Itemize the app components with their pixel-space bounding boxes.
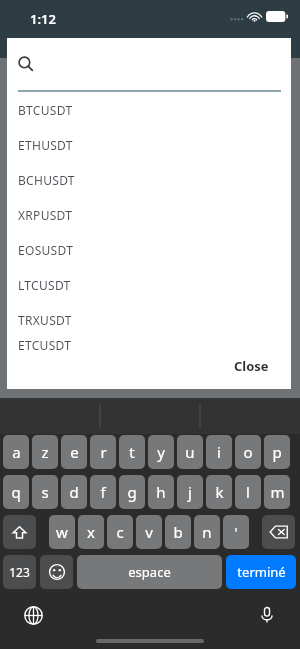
staticText: BTCUSDT — [18, 102, 73, 118]
button[interactable]: g — [119, 475, 145, 509]
button[interactable]: Change keyboard language — [18, 600, 48, 630]
staticText: e — [70, 442, 79, 462]
button[interactable]: BTCUSDT — [7, 92, 291, 127]
staticText: terminé — [237, 563, 286, 581]
staticText: t — [129, 442, 135, 462]
staticText: Close — [234, 357, 269, 375]
staticText: LTCUSDT — [18, 277, 71, 293]
button[interactable]: b — [165, 515, 191, 549]
staticText: u — [185, 442, 195, 462]
staticText: d — [69, 482, 79, 502]
staticText: y — [157, 442, 165, 462]
button[interactable]: 123 — [3, 555, 36, 589]
button[interactable]: espace — [77, 555, 222, 589]
button[interactable]: d — [61, 475, 87, 509]
button[interactable]: c — [107, 515, 133, 549]
staticText: a — [12, 442, 21, 462]
button[interactable]: z — [32, 435, 58, 469]
staticText: w — [56, 522, 68, 542]
button[interactable]: ETHUSDT — [7, 127, 291, 162]
button[interactable]: h — [148, 475, 174, 509]
staticText: TRXUSDT — [18, 312, 72, 328]
staticText: p — [272, 442, 282, 462]
staticText: XRPUSDT — [18, 207, 73, 223]
button[interactable]: y — [148, 435, 174, 469]
button[interactable]: l — [235, 475, 261, 509]
staticText: ETHUSDT — [18, 137, 73, 153]
staticText: n — [202, 522, 212, 542]
button[interactable]: TRXUSDT — [7, 302, 291, 337]
button[interactable]: p — [264, 435, 290, 469]
button[interactable]: Voice input — [252, 600, 282, 630]
button[interactable]: t — [119, 435, 145, 469]
staticText: f — [100, 482, 106, 502]
button[interactable]: XRPUSDT — [7, 197, 291, 232]
staticText: h — [156, 482, 166, 502]
button[interactable]: f — [90, 475, 116, 509]
staticText: z — [41, 442, 49, 462]
button[interactable]: BCHUSDT — [7, 162, 291, 197]
staticText: ETCUSDT — [18, 337, 72, 351]
staticText: v — [145, 522, 153, 542]
button[interactable]: ETCUSDT — [7, 337, 291, 351]
staticText: o — [243, 442, 253, 462]
button[interactable]: Emoji — [40, 555, 73, 589]
button[interactable]: m — [264, 475, 290, 509]
staticText: BCHUSDT — [18, 172, 75, 188]
button[interactable]: Shift — [3, 515, 36, 549]
staticText: ' — [234, 523, 238, 542]
button[interactable]: k — [206, 475, 232, 509]
button[interactable]: terminé — [226, 555, 296, 589]
button[interactable]: EOSUSDT — [7, 232, 291, 267]
button[interactable]: Backspace — [262, 515, 295, 549]
button[interactable]: o — [235, 435, 261, 469]
button[interactable]: a — [3, 435, 29, 469]
staticText: c — [116, 522, 124, 542]
staticText: l — [246, 482, 250, 502]
staticText: j — [188, 482, 192, 502]
button[interactable]: LTCUSDT — [7, 267, 291, 302]
button[interactable]: j — [177, 475, 203, 509]
button[interactable]: v — [136, 515, 162, 549]
button[interactable]: u — [177, 435, 203, 469]
button[interactable]: n — [194, 515, 220, 549]
staticText: r — [100, 442, 107, 462]
button[interactable]: i — [206, 435, 232, 469]
staticText: b — [173, 522, 183, 542]
staticText: espace — [128, 563, 171, 581]
staticText: q — [11, 482, 21, 502]
button[interactable]: s — [32, 475, 58, 509]
button[interactable]: ' — [223, 515, 249, 549]
staticText: m — [270, 482, 285, 502]
staticText: k — [215, 482, 224, 502]
staticText: x — [87, 522, 95, 542]
staticText: s — [41, 482, 49, 502]
button[interactable]: r — [90, 435, 116, 469]
button[interactable]: Search — [7, 38, 291, 90]
button[interactable]: q — [3, 475, 29, 509]
staticText: 1:12 — [30, 10, 56, 28]
button[interactable]: x — [78, 515, 104, 549]
button[interactable]: e — [61, 435, 87, 469]
staticText: EOSUSDT — [18, 242, 74, 258]
staticText: g — [127, 482, 137, 502]
button[interactable]: w — [49, 515, 75, 549]
staticText: i — [217, 442, 221, 462]
button[interactable]: Close — [230, 353, 273, 379]
staticText: 123 — [9, 564, 30, 580]
